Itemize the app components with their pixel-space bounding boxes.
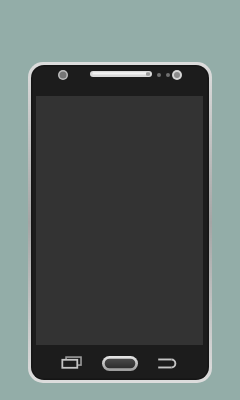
button[interactable]: Home xyxy=(102,356,138,371)
button[interactable]: Recent apps xyxy=(61,355,83,371)
button[interactable]: Back xyxy=(156,355,178,371)
other: Proximity sensor xyxy=(172,70,182,80)
other: Front camera xyxy=(58,70,68,80)
